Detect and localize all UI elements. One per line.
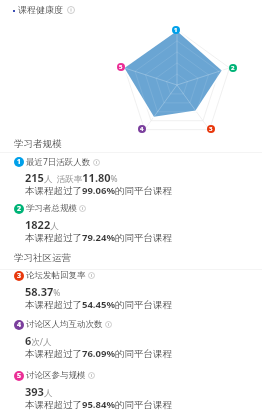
staticText: 学习者规模 [14,138,62,150]
staticText: 3 [17,271,22,281]
staticText: 本课程超过了76.09%的同平台课程 [25,347,172,360]
button[interactable]: 2 [0,203,262,250]
staticText: 本课程超过了99.06%的同平台课程 [25,184,172,197]
staticText: 学习社区运营 [14,252,71,264]
staticText: 2 [231,64,235,72]
button[interactable]: 1 [0,156,262,203]
staticText: 1 [174,26,178,34]
button[interactable]: 4 [0,319,262,366]
staticText: 5 [119,63,123,71]
staticText: 本课程超过了95.84%的同平台课程 [25,398,172,411]
staticText: 1 [17,157,22,167]
staticText: 1822人 [25,217,59,232]
staticText: 最近7日活跃人数 [26,156,91,168]
staticText: 2 [17,204,22,214]
staticText: 393人 [25,384,53,399]
staticText: 215人 活跃率11.80% [25,170,118,185]
staticText: 4 [140,125,144,133]
staticText: 4 [17,320,22,330]
staticText: 58.37% [25,284,61,299]
button[interactable]: 3 [0,270,262,317]
staticText: 本课程超过了54.45%的同平台课程 [25,298,172,311]
staticText: 讨论区参与规模 [26,370,86,381]
button[interactable]: 课程健康度 [13,4,75,15]
staticText: 5 [17,371,22,381]
staticText: 讨论区人均互动次数 [26,319,103,330]
staticText: 3 [209,125,213,133]
staticText: 本课程超过了79.24%的同平台课程 [25,231,172,244]
staticText: 6次/人 [25,333,52,348]
button[interactable]: 5 [0,370,262,417]
staticText: 学习者总规模 [26,203,77,214]
staticText: 论坛发帖回复率 [26,270,86,281]
staticText: 课程健康度 [18,4,63,15]
